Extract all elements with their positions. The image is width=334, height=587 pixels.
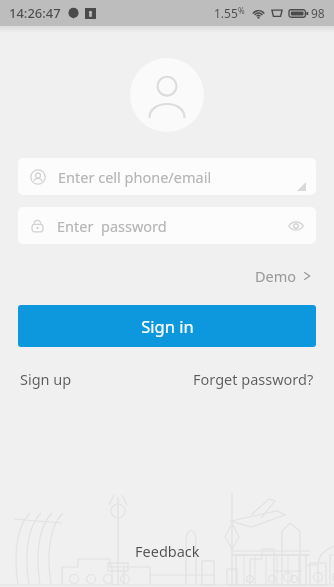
staticText: 1.55 xyxy=(214,5,238,21)
button[interactable]: Enter password xyxy=(18,207,316,244)
button[interactable]: Show password xyxy=(286,216,306,236)
other: Profile avatar xyxy=(130,58,204,132)
staticText: % xyxy=(238,5,245,16)
staticText: Feedback xyxy=(135,541,200,561)
staticText: Enter cell phone/email xyxy=(58,167,212,187)
staticText: Sign in xyxy=(141,315,194,337)
staticText: Forget password? xyxy=(193,369,314,389)
staticText: Enter password xyxy=(57,216,167,236)
staticText: 98 xyxy=(311,5,325,21)
button[interactable]: Forget password? xyxy=(191,365,316,393)
button[interactable]: Sign in xyxy=(18,305,316,347)
staticText: Sign up xyxy=(20,369,72,389)
button[interactable]: Feedback xyxy=(127,537,208,565)
button[interactable]: Enter cell phone/email xyxy=(18,158,316,195)
button[interactable]: Sign up xyxy=(18,365,74,393)
staticText: Demo xyxy=(255,266,297,286)
staticText: 14:26:47 xyxy=(9,4,61,22)
button[interactable]: Demo xyxy=(251,262,316,290)
